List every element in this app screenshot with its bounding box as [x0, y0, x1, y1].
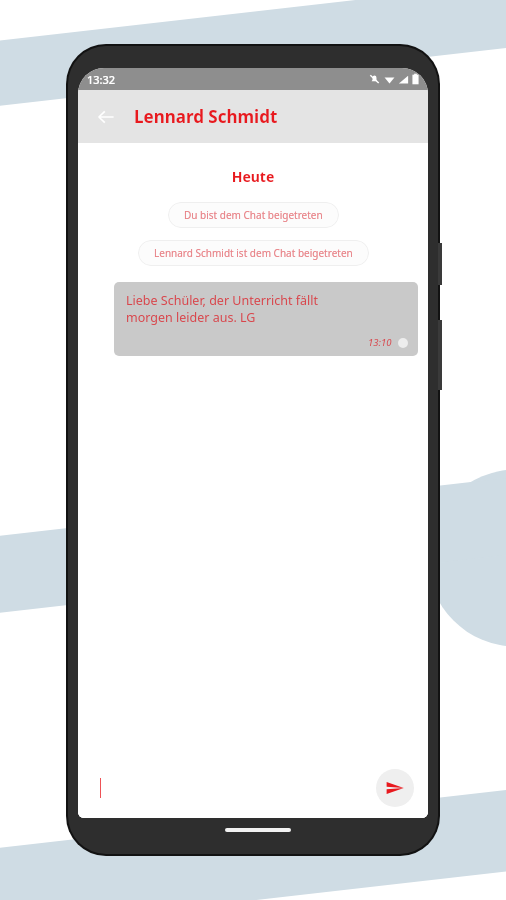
button[interactable]: Du bist dem Chat beigetreten — [168, 202, 339, 228]
staticText: Heute — [78, 167, 428, 186]
button[interactable]: Back — [86, 97, 126, 137]
button[interactable]: Liebe Schüler, der Unterricht fällt morg… — [114, 282, 418, 356]
button[interactable]: Lennard Schmidt ist dem Chat beigetreten — [138, 240, 369, 266]
staticText: Lennard Schmidt ist dem Chat beigetreten — [154, 246, 353, 260]
staticText: 13:10 — [368, 336, 392, 349]
staticText: Du bist dem Chat beigetreten — [184, 208, 323, 222]
staticText: Liebe Schüler, der Unterricht fällt morg… — [126, 292, 356, 326]
staticText: Lennard Schmidt — [134, 105, 278, 128]
button[interactable]: Send — [376, 769, 414, 807]
staticText: 13:32 — [87, 72, 116, 87]
